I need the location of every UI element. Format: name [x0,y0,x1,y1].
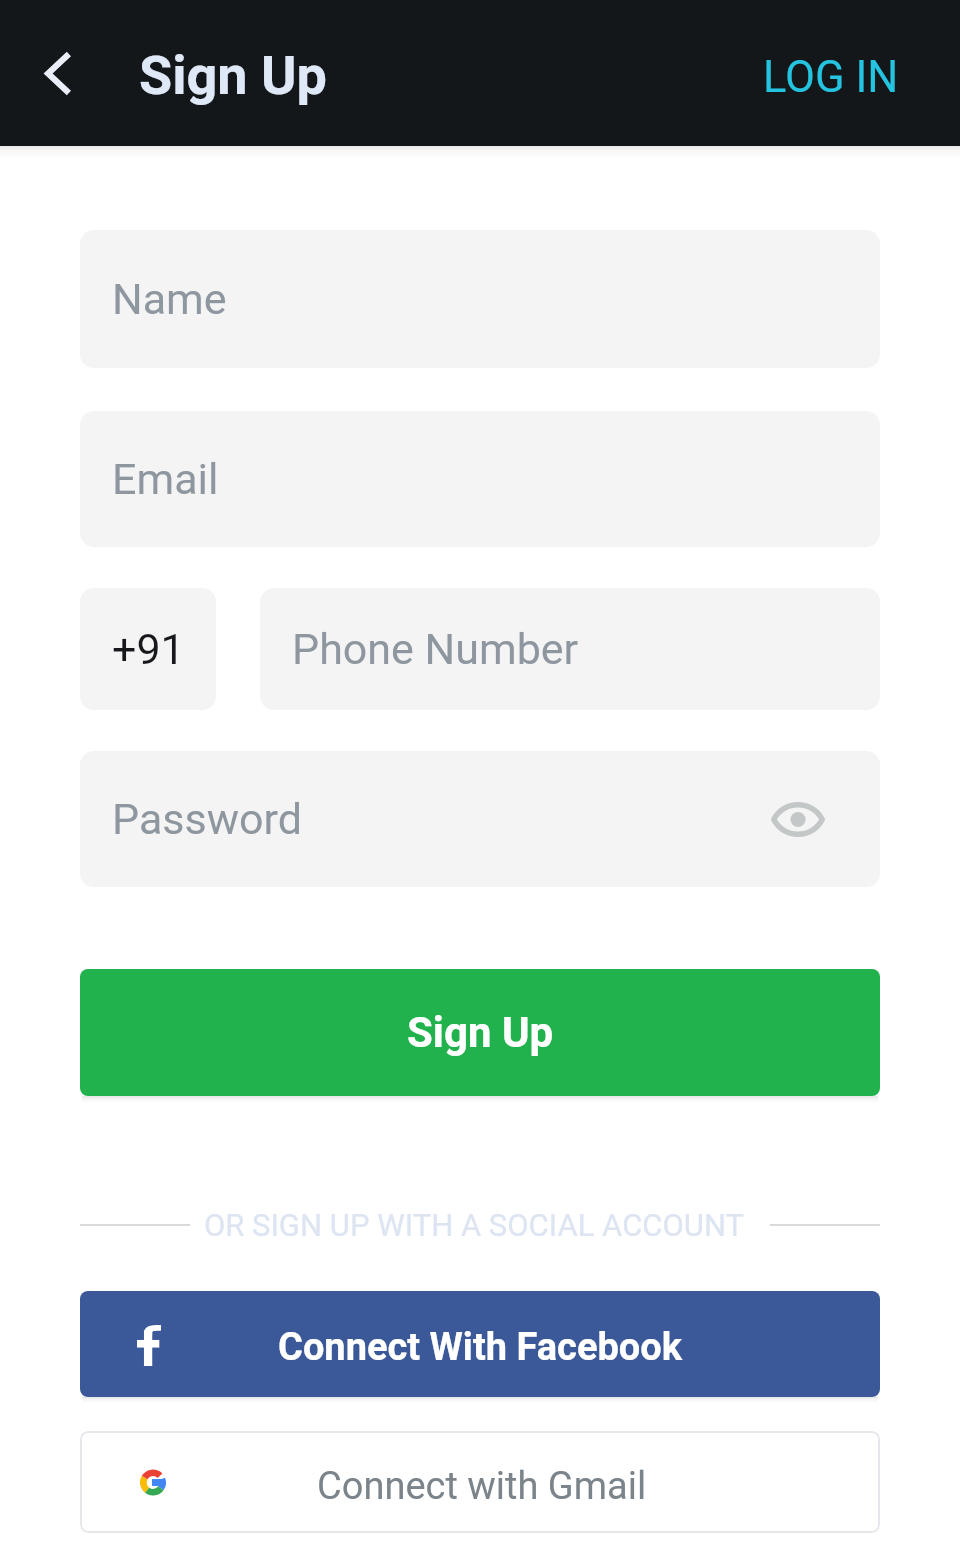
staticText: Connect With Facebook [278,1325,683,1370]
staticText: Sign Up [139,44,327,107]
button[interactable]: Phone Number [260,588,880,710]
staticText: Email [112,454,219,504]
button[interactable]: +91 [80,588,216,710]
button[interactable]: LOG IN [703,14,960,133]
button[interactable]: Sign Up [80,969,880,1096]
button[interactable]: Password [80,751,880,887]
button[interactable]: Email [80,411,880,547]
staticText: +91 [112,624,185,674]
button[interactable]: Back [0,18,110,128]
staticText: Sign Up [407,1008,554,1057]
button[interactable]: Connect with Gmail [80,1431,880,1533]
button[interactable]: Show password [768,789,828,849]
staticText: Password [112,794,302,844]
staticText: Name [112,274,227,324]
staticText: LOG IN [763,52,899,103]
staticText: OR SIGN UP WITH A SOCIAL ACCOUNT [184,1207,764,1243]
button[interactable]: Connect With Facebook [80,1291,880,1397]
button[interactable]: Name [80,230,880,368]
staticText: Phone Number [292,624,579,674]
staticText: Connect with Gmail [317,1464,647,1509]
